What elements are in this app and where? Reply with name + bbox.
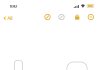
button[interactable]: Lock — [73, 12, 82, 21]
button[interactable]: All — [4, 14, 18, 22]
button[interactable]: Block — [43, 12, 52, 21]
staticText: 8:43 — [10, 3, 17, 9]
button[interactable]: Account — [86, 12, 95, 21]
button[interactable]: Disabled — [57, 12, 66, 21]
staticText: All — [7, 15, 12, 22]
